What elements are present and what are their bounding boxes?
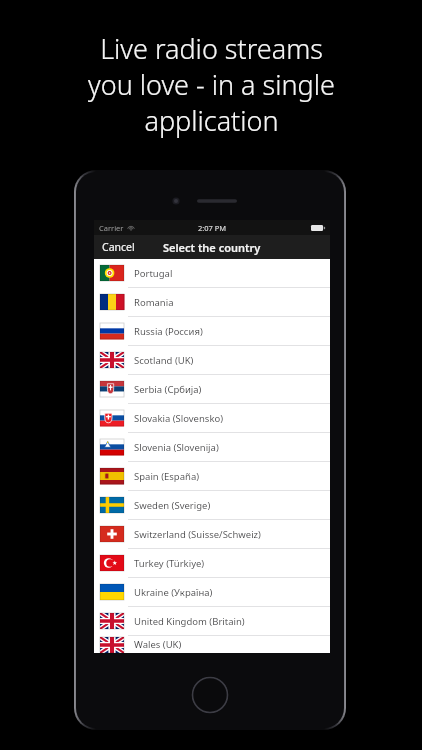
button[interactable]: United Kingdom (Britain) — [94, 607, 330, 636]
staticText: Slovakia (Slovensko) — [134, 412, 224, 425]
staticText: Select the country — [163, 240, 261, 255]
button[interactable]: Slovakia (Slovensko) — [94, 404, 330, 433]
button[interactable]: Romania — [94, 288, 330, 317]
staticText: Spain (España) — [134, 470, 200, 483]
button[interactable]: Serbia (Србија) — [94, 375, 330, 404]
staticText: Russia (Россия) — [134, 325, 203, 338]
button[interactable]: Ukraine (Україна) — [94, 578, 330, 607]
staticText: Portugal — [134, 267, 173, 280]
staticText: Switzerland (Suisse/Schweiz) — [134, 528, 261, 541]
staticText: Scotland (UK) — [134, 354, 194, 367]
button[interactable]: Home — [191, 676, 229, 714]
staticText: Wales (UK) — [134, 638, 182, 651]
staticText: Carrier — [99, 223, 124, 233]
button[interactable]: Russia (Россия) — [94, 317, 330, 346]
staticText: United Kingdom (Britain) — [134, 615, 245, 628]
staticText: Cancel — [102, 240, 135, 254]
staticText: Live radio streams you love - in a singl… — [88, 30, 335, 139]
staticText: 2:07 PM — [198, 223, 227, 233]
button[interactable]: Cancel — [94, 236, 143, 258]
button[interactable]: Slovenia (Slovenija) — [94, 433, 330, 462]
button[interactable]: Portugal — [94, 259, 330, 288]
staticText: Serbia (Србија) — [134, 383, 202, 396]
staticText: Ukraine (Україна) — [134, 586, 213, 599]
button[interactable]: Sweden (Sverige) — [94, 491, 330, 520]
button[interactable]: Spain (España) — [94, 462, 330, 491]
staticText: Slovenia (Slovenija) — [134, 441, 219, 454]
staticText: Turkey (Türkiye) — [134, 557, 205, 570]
staticText: Romania — [134, 296, 174, 309]
button[interactable]: Wales (UK) — [94, 636, 330, 653]
staticText: Sweden (Sverige) — [134, 499, 211, 512]
button[interactable]: Turkey (Türkiye) — [94, 549, 330, 578]
button[interactable]: Scotland (UK) — [94, 346, 330, 375]
button[interactable]: Switzerland (Suisse/Schweiz) — [94, 520, 330, 549]
